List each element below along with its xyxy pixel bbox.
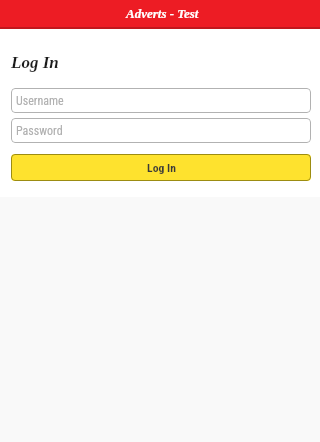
staticText: Adverts - Test <box>126 6 199 20</box>
staticText: Log In <box>147 161 176 175</box>
staticText: Username <box>16 94 64 108</box>
staticText: Log In <box>11 53 59 72</box>
button[interactable]: Username <box>11 88 311 113</box>
button[interactable]: Password <box>11 118 311 143</box>
button[interactable]: Log In <box>11 154 311 181</box>
staticText: Password <box>16 124 63 138</box>
